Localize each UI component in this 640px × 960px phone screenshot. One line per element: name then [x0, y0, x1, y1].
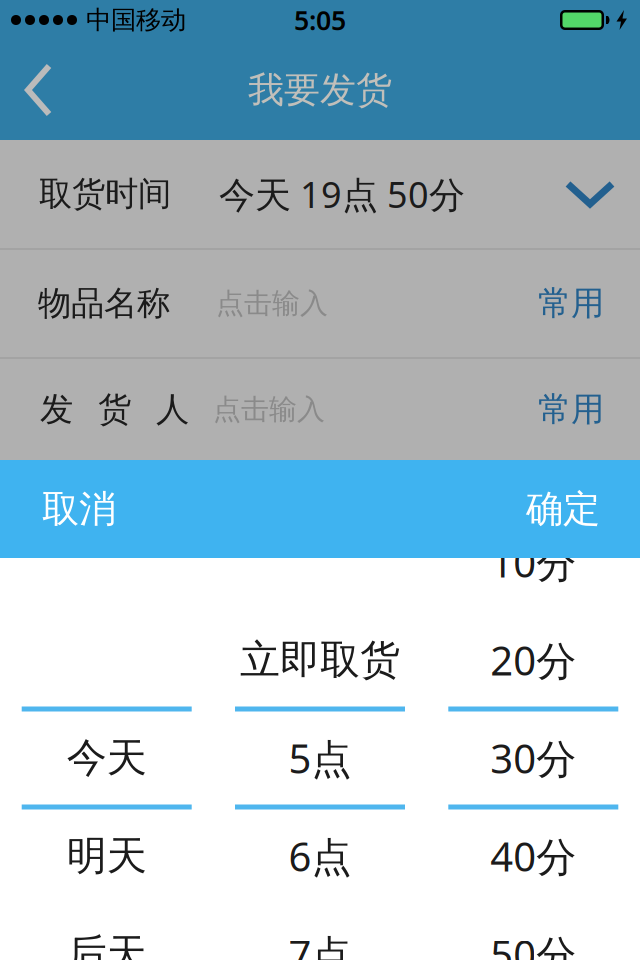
staticText: 今天 19点 50分 [219, 170, 465, 218]
staticText: 常用 [538, 389, 604, 430]
staticText: 确定 [526, 486, 600, 532]
staticText: 5:05 [294, 2, 346, 38]
button[interactable]: 取货时间 [0, 140, 640, 248]
staticText: 人 [156, 389, 189, 430]
staticText: 6点 [288, 829, 351, 882]
staticText: 立即取货 [240, 635, 400, 684]
staticText: 取货时间 [39, 173, 171, 214]
staticText: 20分 [490, 633, 576, 686]
staticText: 点击输入 [213, 392, 325, 427]
button[interactable]: 确定 [526, 461, 640, 557]
staticText: 点击输入 [216, 286, 328, 321]
staticText: 常用 [538, 283, 604, 324]
staticText: 发 [40, 389, 73, 430]
staticText: 50分 [490, 927, 576, 960]
staticText: 物品名称 [38, 283, 170, 324]
staticText: 30分 [490, 731, 576, 784]
button[interactable]: 物品名称 [0, 250, 518, 357]
staticText: 我要发货 [248, 68, 392, 112]
staticText: 中国移动 [86, 4, 186, 35]
button[interactable]: 返回 [0, 41, 53, 139]
staticText: 货 [98, 389, 131, 430]
button[interactable]: 常用 [518, 359, 640, 460]
button[interactable]: 取消 [0, 461, 116, 557]
staticText: 5点 [288, 731, 351, 784]
staticText: 10分 [490, 535, 576, 588]
staticText: 今天 [67, 733, 147, 782]
staticText: 40分 [490, 829, 576, 882]
staticText: 明天 [67, 831, 147, 880]
staticText: 后天 [67, 929, 147, 960]
staticText: 7点 [288, 927, 351, 960]
button[interactable]: 常用 [518, 253, 640, 354]
button[interactable]: 发 [0, 359, 518, 460]
staticText: 取消 [42, 486, 116, 532]
